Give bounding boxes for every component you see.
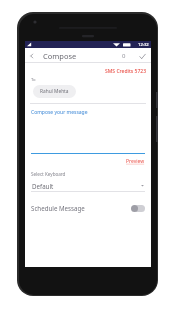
staticText: Default — [32, 182, 54, 190]
staticText: SMS Credits 5723 — [105, 68, 146, 75]
button[interactable]: Back — [25, 49, 39, 63]
button[interactable]: Compose your message — [25, 109, 151, 153]
button[interactable]: Send — [136, 50, 148, 62]
staticText: Select Keyboard — [31, 171, 66, 177]
button[interactable]: Schedule Message — [25, 201, 151, 215]
staticText: Schedule Message — [31, 204, 85, 212]
button[interactable]: Default — [25, 180, 151, 191]
staticText: Rahul Mehta — [40, 88, 69, 95]
staticText: Preview — [126, 158, 145, 165]
button[interactable]: Preview — [126, 157, 151, 166]
staticText: To — [31, 77, 36, 83]
staticText: 0 — [122, 52, 126, 60]
button[interactable]: Rahul Mehta — [33, 85, 76, 98]
staticText: Compose — [43, 51, 77, 61]
staticText: 12:32 — [138, 42, 149, 48]
button[interactable]: 0 — [118, 50, 130, 62]
staticText: Compose your message — [31, 109, 88, 116]
